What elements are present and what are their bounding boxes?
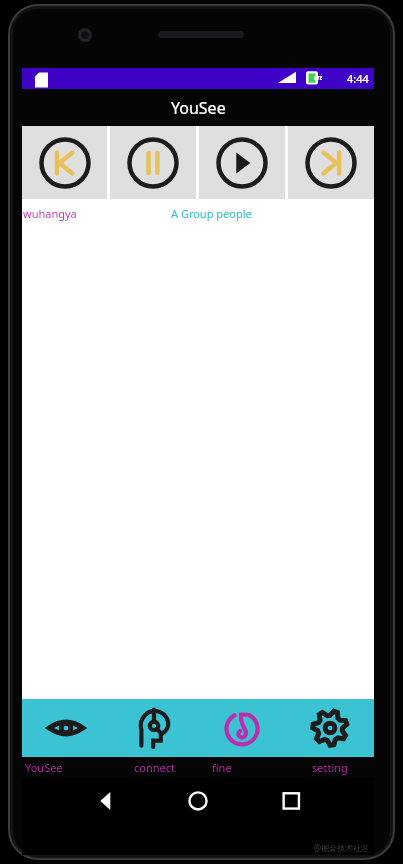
staticText: setting	[312, 760, 348, 775]
button[interactable]: setting	[286, 699, 374, 757]
staticText: fine	[212, 760, 232, 775]
staticText: wuhangya	[23, 206, 77, 221]
staticText: 4:44	[347, 71, 369, 86]
button[interactable]: YouSee	[22, 699, 110, 757]
staticText: A Group people	[171, 206, 252, 221]
staticText: YouSee	[25, 760, 63, 775]
button[interactable]: Play	[199, 126, 285, 199]
button[interactable]: fine	[198, 699, 286, 757]
button[interactable]: Skip next	[288, 126, 374, 199]
button[interactable]: Skip previous	[22, 126, 107, 199]
staticText: YouSee	[171, 97, 226, 119]
staticText: LTE	[314, 75, 323, 82]
staticText: @掘金技术社区	[314, 842, 370, 853]
button[interactable]: Pause	[110, 126, 196, 199]
button[interactable]: connect	[110, 699, 198, 757]
staticText: connect	[134, 760, 175, 775]
